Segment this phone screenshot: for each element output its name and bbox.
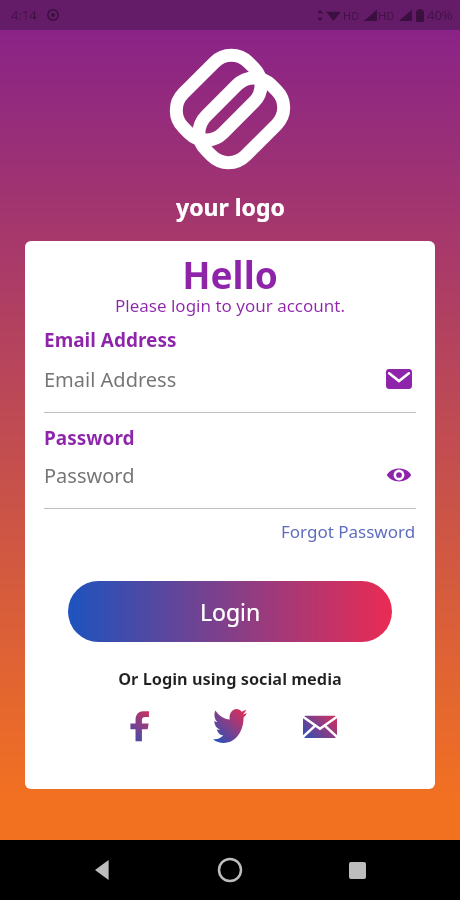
staticText: Or Login using social media [25,668,435,690]
staticText: Email Address [44,327,177,353]
staticText: Email Address [44,366,382,393]
staticText: HD [343,8,360,23]
button[interactable]: Home [206,846,254,894]
button[interactable]: Forgot Password [281,520,416,543]
button[interactable]: Email [382,362,416,396]
staticText: Hello [25,249,435,299]
button[interactable]: Login [68,581,392,642]
staticText: Password [44,425,135,451]
button[interactable]: Recents [333,846,381,894]
button[interactable]: Email [297,703,343,749]
staticText: Login [200,596,261,627]
staticText: 40% [427,6,453,24]
staticText: 4:14 [11,6,37,24]
staticText: Please login to your account. [25,294,435,317]
button[interactable]: Twitter [207,703,253,749]
button[interactable]: Back [79,846,127,894]
staticText: your logo [176,191,285,222]
button[interactable]: Facebook [117,703,163,749]
button[interactable]: Show password [382,458,416,492]
staticText: Password [44,462,382,489]
staticText: HD [378,8,395,23]
